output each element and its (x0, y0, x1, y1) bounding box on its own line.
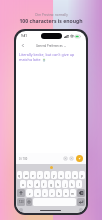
staticText: 123 (19, 200, 24, 204)
button[interactable]: a (20, 180, 26, 188)
button[interactable]: Return (77, 198, 85, 206)
staticText: q (18, 173, 21, 177)
button[interactable]: Numbers (17, 198, 25, 206)
button[interactable]: Backspace (77, 189, 85, 197)
staticText: w (25, 173, 28, 177)
staticText: x (37, 191, 39, 195)
button[interactable]: q (17, 171, 22, 179)
button[interactable]: Attach (63, 156, 68, 161)
staticText: h (57, 182, 60, 186)
button[interactable]: v (49, 189, 55, 197)
staticText: Dim Preview: normally (35, 13, 68, 17)
button[interactable]: Emoji (26, 198, 32, 206)
button[interactable]: h (55, 180, 61, 188)
button[interactable]: Emoji suggestion (50, 166, 53, 169)
staticText: n (65, 191, 68, 195)
staticText: g (50, 182, 53, 186)
button[interactable]: c (42, 189, 48, 197)
staticText: o (74, 173, 76, 177)
button[interactable]: m (70, 189, 76, 197)
button[interactable]: e (30, 171, 36, 179)
button[interactable]: o (72, 171, 78, 179)
staticText: m (71, 191, 75, 195)
staticText: d (36, 182, 39, 186)
staticText: Literally broke, but can't give up match… (19, 52, 78, 62)
staticText: l (79, 182, 80, 186)
button[interactable]: n (63, 189, 69, 197)
staticText: 0 / 100 (19, 157, 28, 161)
staticText: s (29, 182, 31, 186)
button[interactable]: p (79, 171, 85, 179)
button[interactable]: Switch keyboard (19, 208, 23, 212)
staticText: r (39, 173, 41, 177)
button[interactable]: i (65, 171, 71, 179)
staticText: e (32, 173, 34, 177)
staticText: v (51, 191, 53, 195)
staticText: a (22, 182, 24, 186)
button[interactable]: z (26, 189, 33, 197)
button[interactable]: t (44, 171, 50, 179)
staticText: i (68, 173, 69, 177)
button[interactable]: Camera (69, 156, 74, 161)
staticText: b (58, 191, 61, 195)
button[interactable]: l (76, 180, 82, 188)
button[interactable]: s (27, 180, 33, 188)
staticText: 9:41 (21, 34, 27, 38)
button[interactable]: Back (19, 42, 26, 49)
button[interactable]: j (62, 180, 68, 188)
button[interactable]: b (56, 189, 62, 197)
staticText: f (43, 182, 45, 186)
button[interactable]: x (34, 189, 41, 197)
staticText: General Preferences (36, 44, 63, 48)
button[interactable]: Send (76, 155, 83, 162)
staticText: k (71, 182, 73, 186)
button[interactable]: w (23, 171, 29, 179)
button[interactable]: d (34, 180, 40, 188)
staticText: p (81, 173, 84, 177)
staticText: j (65, 182, 66, 186)
button[interactable]: Dictation (79, 208, 83, 212)
button[interactable]: r (37, 171, 43, 179)
button[interactable]: k (69, 180, 75, 188)
staticText: t (46, 173, 48, 177)
staticText: y (53, 173, 55, 177)
button[interactable]: g (48, 180, 54, 188)
staticText: c (44, 191, 46, 195)
button[interactable]: f (41, 180, 47, 188)
button[interactable]: u (58, 171, 64, 179)
button[interactable]: Shift (17, 189, 25, 197)
staticText: 100 characters is enough (19, 18, 83, 25)
staticText: u (60, 173, 63, 177)
button[interactable]: y (51, 171, 57, 179)
staticText: z (29, 191, 31, 195)
